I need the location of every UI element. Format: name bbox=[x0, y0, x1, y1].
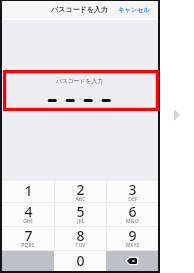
button[interactable]: 5 bbox=[55, 203, 106, 226]
staticText: 2 bbox=[76, 180, 85, 199]
staticText: MNO bbox=[126, 218, 139, 225]
staticText: 3 bbox=[128, 180, 137, 199]
button[interactable]: Delete bbox=[106, 251, 158, 271]
staticText: 6 bbox=[128, 202, 137, 221]
button[interactable]: 4 bbox=[2, 203, 54, 226]
button[interactable]: 6 bbox=[107, 203, 158, 226]
staticText: 4 bbox=[24, 202, 33, 221]
button[interactable]: 1 bbox=[2, 181, 54, 202]
staticText: 0 bbox=[76, 251, 85, 270]
staticText: 5 bbox=[76, 202, 85, 221]
button[interactable]: 7 bbox=[2, 227, 54, 250]
staticText: ABC bbox=[75, 196, 86, 203]
staticText: 7 bbox=[24, 226, 33, 245]
staticText: DEF bbox=[128, 196, 138, 203]
button[interactable]: 9 bbox=[107, 227, 158, 250]
staticText: WXYZ bbox=[125, 242, 140, 249]
staticText: パスコードを入力 bbox=[56, 77, 104, 84]
staticText: 1 bbox=[24, 181, 33, 200]
button[interactable]: キャンセル bbox=[114, 1, 158, 18]
button[interactable]: 8 bbox=[55, 227, 106, 250]
button[interactable]: 2 bbox=[55, 181, 106, 202]
staticText: GHI bbox=[23, 218, 33, 225]
button[interactable]: 3 bbox=[107, 181, 158, 202]
staticText: PQRS bbox=[21, 242, 35, 249]
staticText: 8 bbox=[76, 226, 85, 245]
staticText: パスコードを入力 bbox=[51, 5, 108, 14]
button[interactable]: 0 bbox=[54, 251, 106, 271]
staticText: 9 bbox=[128, 226, 137, 245]
staticText: キャンセル bbox=[118, 6, 150, 14]
staticText: TUV bbox=[75, 242, 86, 249]
staticText: JKL bbox=[77, 218, 85, 225]
